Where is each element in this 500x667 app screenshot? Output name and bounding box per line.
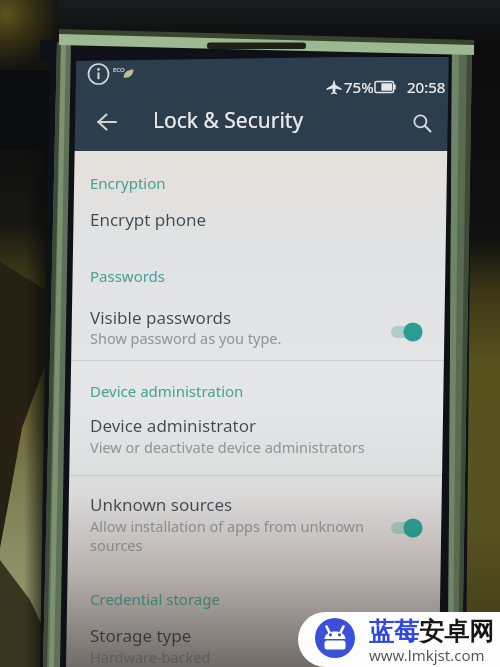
staticText: Storage type — [90, 624, 192, 647]
staticText: Visible passwords — [90, 306, 232, 329]
staticText: Device administrator — [90, 414, 256, 437]
staticText: Lock & Security — [153, 106, 304, 135]
staticText: www.lmkjst.com — [369, 645, 485, 665]
staticText: Passwords — [90, 266, 166, 286]
staticText: Encryption — [90, 173, 166, 193]
staticText: Show password as you type. — [90, 328, 282, 348]
staticText: Credential storage — [90, 589, 220, 609]
button[interactable]: Search — [400, 103, 444, 143]
staticText: Hardware-backed — [90, 647, 211, 667]
staticText: View or deactivate device administrators — [90, 437, 365, 457]
staticText: Encrypt phone — [90, 208, 207, 231]
staticText: Unknown sources — [90, 493, 233, 516]
staticText: Allow installation of apps from unknown — [90, 516, 364, 536]
staticText: sources — [90, 535, 143, 555]
button[interactable]: Toggle — [387, 318, 441, 346]
staticText: Device administration — [90, 381, 244, 401]
button[interactable]: Toggle — [387, 514, 441, 542]
staticText: 蓝莓 — [369, 616, 419, 647]
staticText: 安卓网 — [419, 616, 494, 647]
staticText: ECO — [113, 66, 125, 74]
staticText: 75% — [344, 77, 374, 97]
button[interactable]: Back — [84, 102, 130, 142]
staticText: 20:58 — [407, 77, 446, 97]
